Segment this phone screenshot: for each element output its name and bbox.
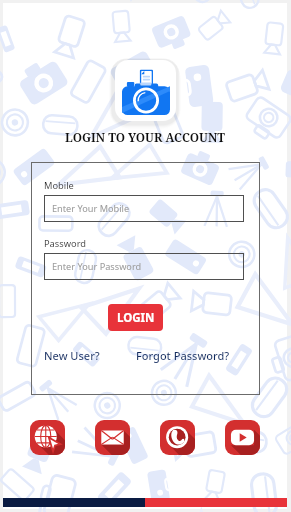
staticText: LOGIN TO YOUR ACCOUNT xyxy=(65,129,225,145)
button[interactable]: Forgot Password? xyxy=(136,348,230,363)
button[interactable]: Enter Your Mobile xyxy=(44,195,244,222)
button[interactable]: Email xyxy=(95,420,130,455)
staticText: Forgot Password? xyxy=(136,348,230,363)
button[interactable]: LOGIN xyxy=(108,304,163,331)
button[interactable]: YouTube xyxy=(225,420,260,455)
button[interactable]: Website xyxy=(30,420,65,455)
button[interactable]: New User? xyxy=(44,348,100,363)
staticText: Mobile xyxy=(44,179,74,192)
staticText: New User? xyxy=(44,348,100,363)
button[interactable]: Enter Your Password xyxy=(44,253,244,280)
staticText: Password xyxy=(44,237,87,250)
staticText: Enter Your Password xyxy=(52,260,142,273)
staticText: LOGIN xyxy=(117,310,155,326)
staticText: Enter Your Mobile xyxy=(52,202,130,215)
button[interactable]: Call xyxy=(160,420,195,455)
